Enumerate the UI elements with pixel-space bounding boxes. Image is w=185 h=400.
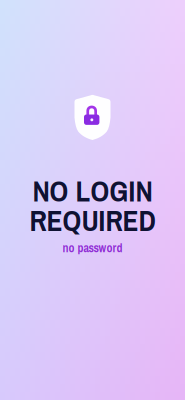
staticText: REQUIRED [29,201,155,240]
staticText: NO LOGIN [32,171,152,211]
staticText: no password [62,240,122,256]
